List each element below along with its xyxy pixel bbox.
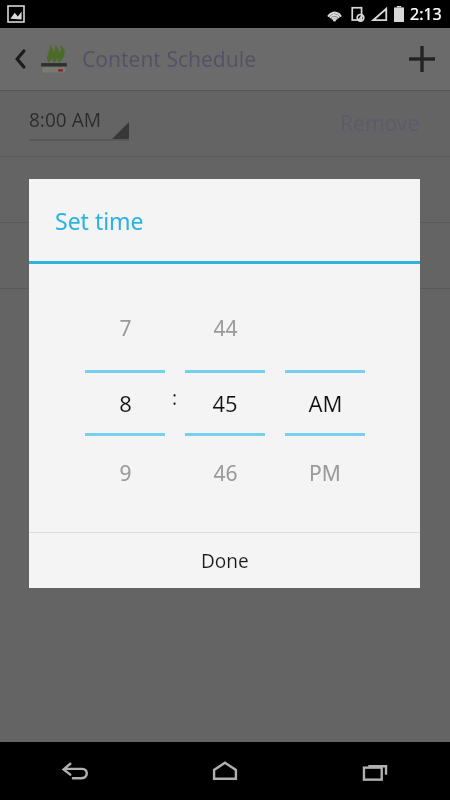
button[interactable]: Done (29, 533, 420, 588)
button[interactable]: Remove (340, 109, 420, 138)
staticText: PM (309, 459, 341, 488)
button[interactable]: Home (150, 742, 300, 800)
staticText: Set time (55, 205, 144, 236)
staticText: Remove (340, 109, 420, 138)
staticText: 8 (119, 388, 132, 418)
staticText: 44 (213, 314, 238, 343)
staticText: AM (308, 388, 343, 418)
staticText: 9 (119, 459, 132, 488)
button[interactable]: 45 (185, 373, 265, 433)
staticText: 46 (213, 459, 238, 488)
button[interactable]: Recent apps (300, 742, 450, 800)
staticText: 7 (119, 314, 132, 343)
staticText: 2:13 (410, 3, 442, 25)
button[interactable]: 9:00 AM (29, 170, 129, 210)
staticText: Content Schedule (82, 45, 256, 74)
staticText: : (172, 385, 178, 411)
button[interactable]: Back (8, 46, 34, 72)
button[interactable]: Remove (340, 175, 420, 204)
staticText: 8:00 AM (29, 107, 102, 133)
staticText: 9:00 AM (29, 173, 102, 199)
button[interactable]: 8 (85, 373, 165, 433)
staticText: 9:30 AM (29, 239, 102, 265)
staticText: 45 (212, 388, 238, 418)
button[interactable]: Remove (340, 241, 420, 270)
button[interactable]: 8:00 AM (29, 104, 129, 144)
button[interactable]: Back (0, 742, 150, 800)
button[interactable]: AM (285, 373, 365, 433)
button[interactable]: 9:30 AM (29, 236, 129, 276)
staticText: Remove (340, 175, 420, 204)
button[interactable]: Add (394, 31, 450, 87)
staticText: Done (201, 548, 249, 574)
staticText: Remove (340, 241, 420, 270)
